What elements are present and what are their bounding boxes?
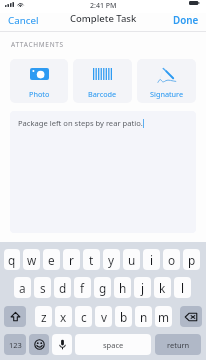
button[interactable]: space: [75, 334, 151, 355]
staticText: n: [140, 309, 148, 325]
staticText: Complete Task: [70, 12, 137, 25]
button[interactable]: r: [63, 249, 80, 270]
button[interactable]: v: [95, 306, 112, 327]
button[interactable]: Barcode: [73, 59, 132, 103]
button[interactable]: q: [4, 249, 20, 270]
staticText: k: [159, 280, 166, 296]
staticText: Signature: [150, 89, 184, 99]
staticText: q: [8, 252, 16, 268]
button[interactable]: a: [14, 277, 31, 298]
button[interactable]: f: [74, 277, 91, 298]
staticText: i: [150, 252, 154, 268]
button[interactable]: Signature: [137, 59, 196, 103]
staticText: a: [19, 280, 26, 296]
staticText: o: [168, 252, 176, 268]
staticText: u: [128, 252, 136, 268]
staticText: t: [89, 252, 94, 268]
button[interactable]: Emoji: [29, 334, 49, 355]
staticText: m: [158, 309, 170, 325]
staticText: e: [48, 252, 55, 268]
staticText: d: [59, 280, 67, 296]
staticText: g: [99, 280, 107, 296]
button[interactable]: i: [143, 249, 160, 270]
button[interactable]: o: [163, 249, 180, 270]
button[interactable]: m: [155, 306, 172, 327]
staticText: Photo: [29, 89, 50, 99]
button[interactable]: l: [174, 277, 191, 298]
staticText: 123: [9, 340, 22, 350]
staticText: r: [69, 252, 74, 268]
staticText: s: [40, 280, 46, 296]
button[interactable]: b: [115, 306, 132, 327]
button[interactable]: w: [23, 249, 40, 270]
button[interactable]: Done: [165, 11, 206, 32]
button[interactable]: Dictate: [52, 334, 72, 355]
staticText: Cancel: [8, 14, 39, 27]
button[interactable]: Cancel: [0, 11, 47, 32]
button[interactable]: d: [54, 277, 71, 298]
staticText: Package left on steps by rear patio.: [18, 118, 143, 128]
staticText: h: [119, 280, 127, 296]
staticText: ATTACHMENTS: [11, 40, 64, 49]
staticText: w: [27, 252, 37, 268]
button[interactable]: t: [83, 249, 100, 270]
button[interactable]: z: [35, 306, 52, 327]
button[interactable]: e: [43, 249, 60, 270]
button[interactable]: Photo: [10, 59, 68, 103]
staticText: 2:41 PM: [90, 1, 117, 11]
staticText: b: [120, 309, 128, 325]
button[interactable]: n: [135, 306, 152, 327]
button[interactable]: 123: [4, 334, 26, 355]
button[interactable]: y: [103, 249, 120, 270]
staticText: Done: [173, 14, 199, 27]
staticText: y: [108, 252, 115, 268]
staticText: Barcode: [88, 89, 117, 99]
button[interactable]: u: [123, 249, 140, 270]
button[interactable]: g: [94, 277, 111, 298]
staticText: l: [181, 280, 185, 296]
button[interactable]: h: [114, 277, 131, 298]
staticText: return: [167, 340, 190, 350]
staticText: p: [188, 252, 196, 268]
button[interactable]: j: [134, 277, 151, 298]
button[interactable]: return: [155, 334, 201, 355]
staticText: v: [101, 309, 107, 325]
button[interactable]: k: [154, 277, 171, 298]
button[interactable]: c: [75, 306, 92, 327]
staticText: f: [80, 280, 85, 296]
staticText: z: [41, 309, 47, 325]
button[interactable]: Package left on steps by rear patio.: [10, 111, 196, 233]
staticText: space: [103, 340, 124, 350]
staticText: x: [60, 309, 67, 325]
button[interactable]: Backspace: [180, 306, 202, 327]
button[interactable]: Shift: [4, 306, 26, 327]
staticText: j: [141, 280, 145, 296]
button[interactable]: x: [55, 306, 72, 327]
button[interactable]: s: [34, 277, 51, 298]
staticText: c: [81, 309, 87, 325]
button[interactable]: p: [183, 249, 200, 270]
